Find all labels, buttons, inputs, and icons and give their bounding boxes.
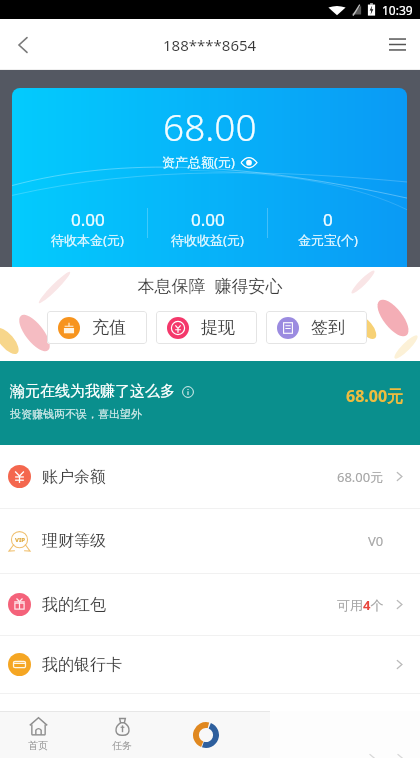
staticText: 本息保障 赚得安心 <box>0 274 420 297</box>
staticText: 68.00元 <box>337 468 384 486</box>
staticText: 待收收益(元) <box>171 231 244 249</box>
staticText: 68.00元 <box>346 385 404 407</box>
staticText: 10:39 <box>382 2 413 18</box>
staticText: 首页 <box>28 739 48 752</box>
staticText: V0 <box>368 532 384 550</box>
button[interactable]: 签到 <box>266 311 367 344</box>
button[interactable]: 提现 <box>156 311 257 344</box>
button[interactable]: 任务 <box>80 711 164 758</box>
button[interactable]: Menu <box>374 19 420 70</box>
button[interactable]: 我的银行卡 <box>0 636 420 693</box>
staticText: 0 <box>323 208 333 231</box>
staticText: 账户余额 <box>42 467 106 487</box>
button[interactable]: VIP <box>0 509 420 573</box>
button[interactable]: 我的红包 <box>0 574 420 635</box>
staticText: 资产总额(元) <box>162 153 235 171</box>
staticText: 68.00 <box>163 101 257 151</box>
staticText: 188****8654 <box>163 35 257 55</box>
staticText: 0.00 <box>71 208 105 231</box>
staticText: 投资赚钱两不误，喜出望外 <box>10 407 142 421</box>
button[interactable]: 充值 <box>47 311 147 344</box>
staticText: 充值 <box>92 317 126 338</box>
button[interactable]: Logo <box>164 711 248 758</box>
staticText: 我的银行卡 <box>42 655 122 675</box>
staticText: 瀚元在线为我赚了这么多 <box>10 382 175 401</box>
button[interactable]: Back <box>0 19 46 70</box>
staticText: 可用4个 <box>337 596 384 614</box>
staticText: 任务 <box>112 739 132 752</box>
staticText: 签到 <box>311 317 345 338</box>
button[interactable]: 首页 <box>0 711 80 758</box>
staticText: 0.00 <box>191 208 225 231</box>
staticText: 金元宝(个) <box>298 231 358 249</box>
staticText: 提现 <box>201 317 235 338</box>
button[interactable]: 账户余额 <box>0 445 420 508</box>
staticText: 待收本金(元) <box>51 231 124 249</box>
staticText: VIP <box>15 536 25 544</box>
staticText: 我的红包 <box>42 595 106 615</box>
button[interactable]: 瀚元在线为我赚了这么多 <box>0 361 420 445</box>
staticText: 理财等级 <box>42 531 106 551</box>
